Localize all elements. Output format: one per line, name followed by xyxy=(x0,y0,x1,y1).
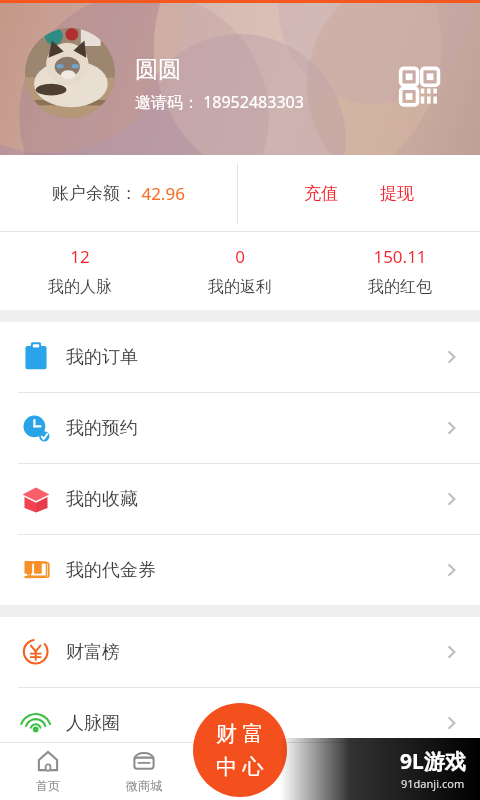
staticText: 42.96 xyxy=(137,182,185,205)
staticText: 圆圆 xyxy=(135,55,181,84)
button[interactable]: 我的订单 xyxy=(0,322,480,392)
button[interactable]: 财 富 xyxy=(193,703,287,797)
staticText: 提现 xyxy=(380,183,414,204)
button[interactable]: Scan QR code xyxy=(399,65,441,107)
staticText: 中 心 xyxy=(216,752,264,781)
button[interactable]: 首页 xyxy=(0,742,96,800)
staticText: 财 富 xyxy=(216,719,264,748)
button[interactable]: 12 xyxy=(0,232,160,310)
button[interactable]: 提现 xyxy=(366,173,428,214)
staticText: 微商城 xyxy=(126,778,162,793)
button[interactable]: 我的代金券 xyxy=(0,535,480,605)
staticText: 财富榜 xyxy=(66,641,120,664)
button[interactable]: 人脉圈 xyxy=(0,688,480,758)
staticText: 我的返利 xyxy=(208,277,272,297)
staticText: 邀请码： 18952483303 xyxy=(135,91,304,113)
button[interactable]: 财富榜 xyxy=(0,617,480,687)
button[interactable]: 充值 xyxy=(290,173,352,214)
button[interactable]: 150.11 xyxy=(320,232,480,310)
staticText: 我的预约 xyxy=(66,417,138,440)
staticText: 150.11 xyxy=(373,245,427,268)
button[interactable]: Avatar xyxy=(25,28,115,118)
staticText: 我的代金券 xyxy=(66,559,156,582)
button[interactable]: 微商城 xyxy=(96,742,192,800)
staticText: 我的收藏 xyxy=(66,488,138,511)
staticText: 首页 xyxy=(36,778,60,793)
button[interactable]: 我的收藏 xyxy=(0,464,480,534)
staticText: 我的人脉 xyxy=(48,277,112,297)
staticText: 12 xyxy=(70,245,90,268)
staticText: 人脉圈 xyxy=(66,712,120,735)
button[interactable]: 账户余额： xyxy=(0,155,237,232)
staticText: 账户余额： xyxy=(52,183,137,204)
staticText: 91danji.com xyxy=(401,776,465,791)
staticText: 0 xyxy=(235,245,245,268)
staticText: 我的订单 xyxy=(66,346,138,369)
button[interactable]: 0 xyxy=(160,232,320,310)
staticText: 充值 xyxy=(304,183,338,204)
staticText: 我的红包 xyxy=(368,277,432,297)
staticText: 9L游戏 xyxy=(400,747,466,776)
button[interactable]: 我的预约 xyxy=(0,393,480,463)
